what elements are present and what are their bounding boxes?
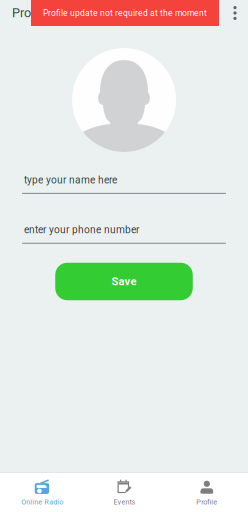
staticText: Profile	[196, 498, 217, 506]
staticText: Profile update not required at the momen…	[43, 8, 207, 18]
button[interactable]: More options	[222, 0, 248, 26]
button[interactable]: Profile	[166, 473, 248, 512]
button[interactable]: Save	[55, 263, 193, 300]
staticText: enter your phone number	[24, 224, 139, 236]
staticText: type your name here	[24, 174, 117, 186]
staticText: Events	[113, 498, 135, 506]
button[interactable]: Online Radio	[1, 473, 83, 512]
staticText: Profile	[12, 6, 48, 20]
staticText: Online Radio	[21, 498, 63, 506]
button[interactable]: Events	[83, 473, 166, 512]
staticText: Save	[111, 275, 136, 288]
